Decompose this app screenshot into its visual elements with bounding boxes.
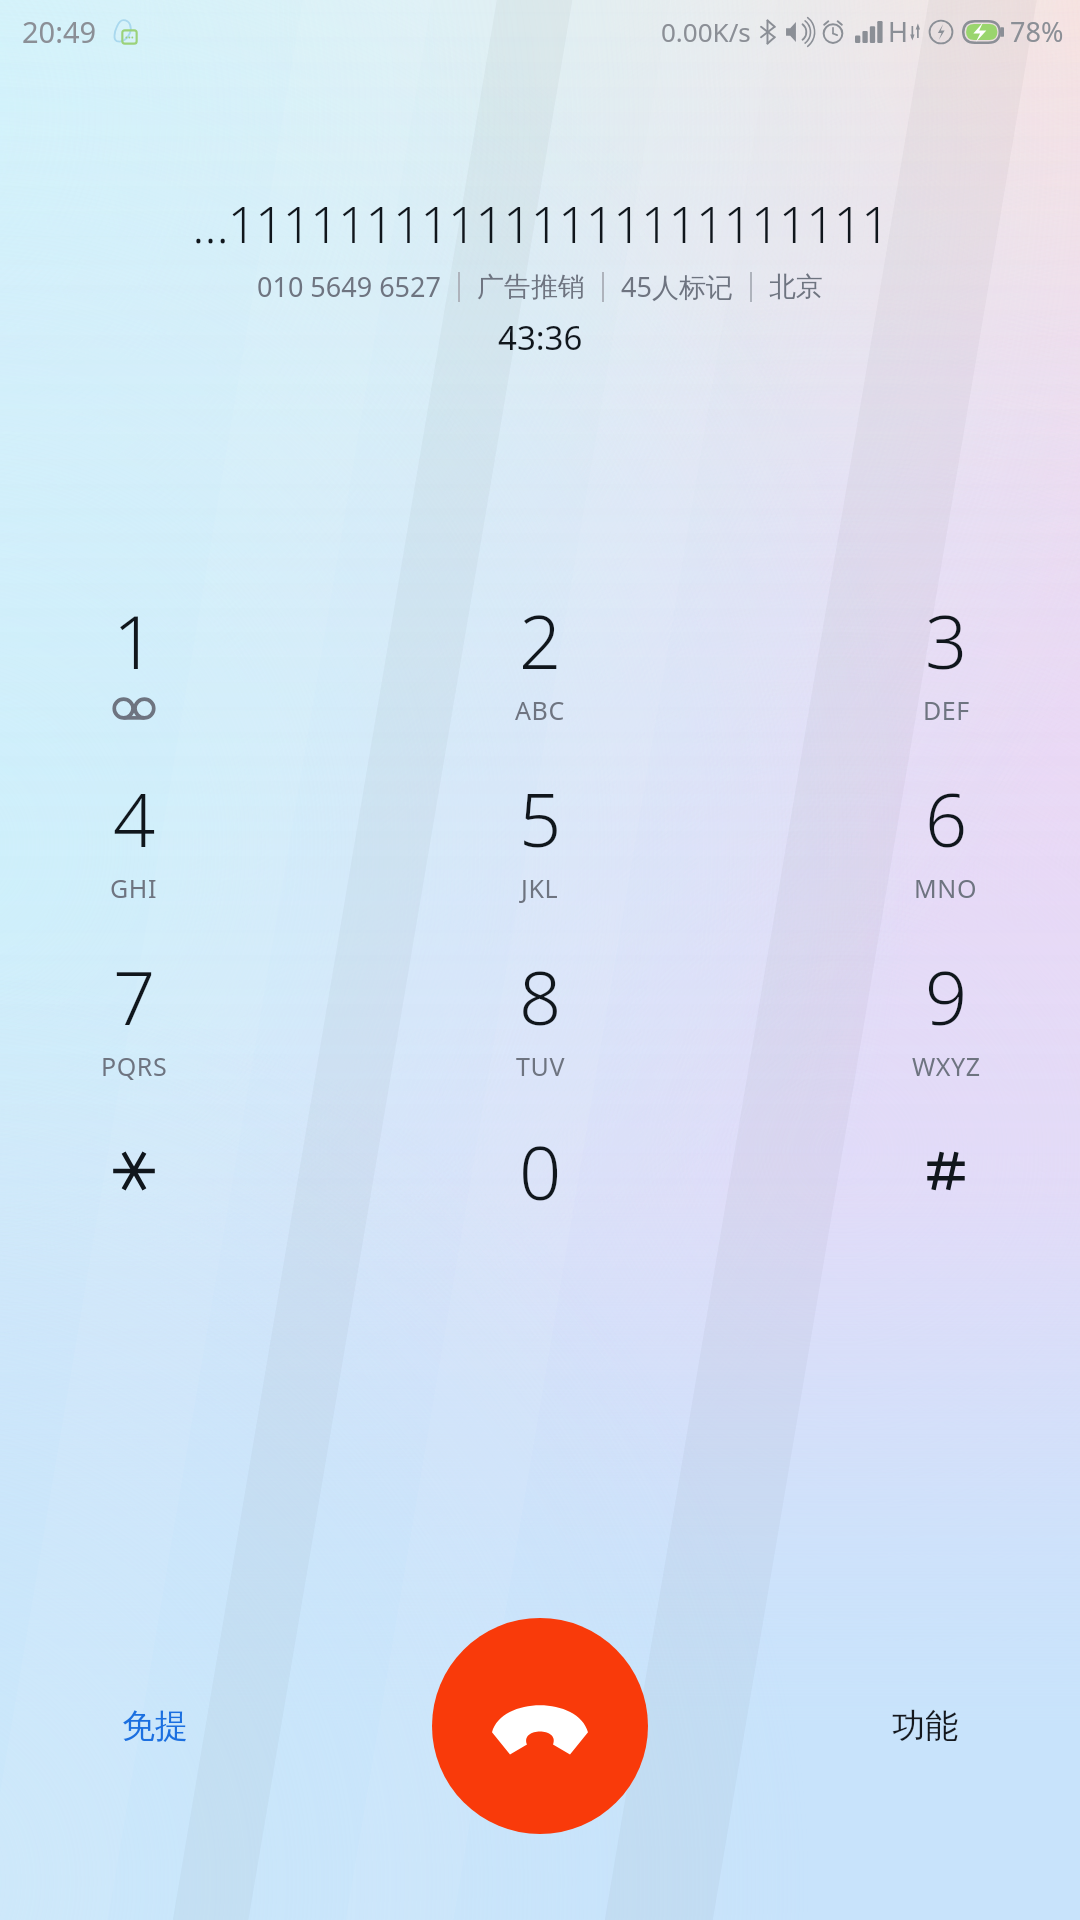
staticText: GHI <box>110 871 158 905</box>
staticText: 8 <box>519 946 562 1047</box>
button[interactable]: Key 0 <box>466 1121 614 1231</box>
staticText: 78% <box>1010 13 1064 50</box>
staticText: 0.00K/s <box>661 14 751 49</box>
button[interactable]: Key 2 <box>466 590 614 735</box>
staticText: PQRS <box>101 1049 168 1083</box>
staticText: ABC <box>515 693 565 727</box>
staticText: H <box>888 13 909 50</box>
staticText: 广告推销 <box>477 270 585 304</box>
button[interactable]: Key 6 <box>872 768 1020 913</box>
staticText: 2 <box>519 590 562 691</box>
button[interactable]: Pound key <box>872 1121 1020 1231</box>
staticText: 6 <box>925 768 968 869</box>
button[interactable]: Key 9 <box>872 946 1020 1091</box>
button[interactable]: Key 7 <box>60 946 208 1091</box>
button[interactable]: Key 8 <box>466 946 614 1091</box>
staticText: DEF <box>923 693 970 727</box>
staticText: 20:49 <box>22 12 97 51</box>
staticText: 功能 <box>892 1705 958 1747</box>
staticText: 3 <box>925 590 968 691</box>
button[interactable]: End call <box>432 1618 648 1834</box>
staticText: 4 <box>113 768 156 869</box>
staticText: 010 5649 6527 <box>257 268 441 305</box>
staticText: 43:36 <box>498 315 583 360</box>
button[interactable]: Key 5 <box>466 768 614 913</box>
button[interactable]: 功能 <box>878 1689 972 1763</box>
button[interactable]: Key 1 <box>60 590 208 735</box>
staticText: TUV <box>516 1049 565 1083</box>
staticText: MNO <box>914 871 978 905</box>
staticText: 0 <box>519 1121 562 1222</box>
staticText: 北京 <box>769 270 823 304</box>
staticText: 5 <box>519 768 562 869</box>
staticText: …111111111111111111111111 <box>192 190 889 258</box>
staticText: 免提 <box>122 1705 188 1747</box>
staticText: 45人标记 <box>621 268 733 305</box>
staticText: WXYZ <box>912 1049 981 1083</box>
staticText: 7 <box>113 946 156 1047</box>
button[interactable]: Key 4 <box>60 768 208 913</box>
staticText: 1 <box>113 590 156 691</box>
staticText: 9 <box>925 946 968 1047</box>
staticText: JKL <box>521 871 559 905</box>
button[interactable]: Star key <box>60 1121 208 1231</box>
button[interactable]: 免提 <box>108 1689 202 1763</box>
button[interactable]: Key 3 <box>872 590 1020 735</box>
